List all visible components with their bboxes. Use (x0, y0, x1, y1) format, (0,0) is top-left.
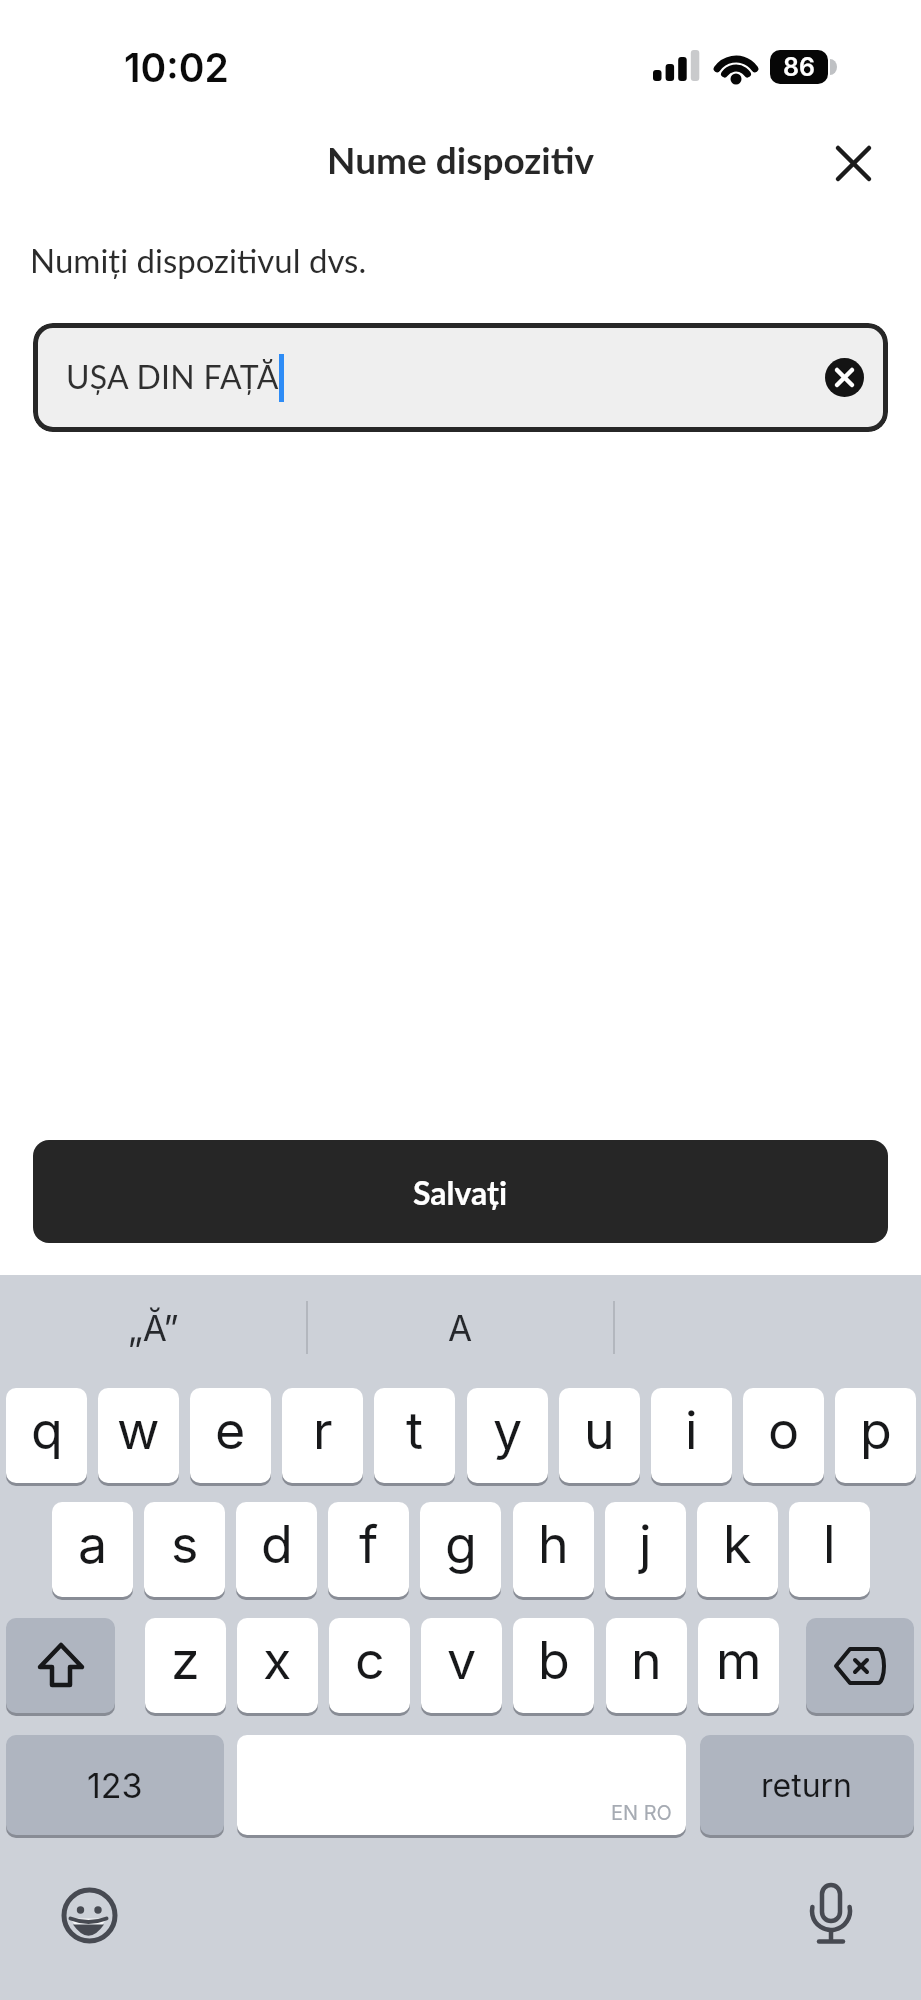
staticText: n (631, 1629, 662, 1692)
button[interactable]: k (697, 1502, 778, 1597)
button[interactable] (825, 358, 864, 397)
staticText: Nume dispozitiv (327, 137, 595, 181)
staticText: 10:02 (124, 44, 229, 91)
button[interactable]: d (236, 1502, 317, 1597)
button[interactable]: s (144, 1502, 225, 1597)
staticText: 86 (783, 52, 815, 82)
staticText: o (768, 1399, 800, 1462)
staticText: f (359, 1513, 379, 1576)
button[interactable]: b (513, 1618, 594, 1713)
staticText: l (823, 1513, 836, 1576)
button[interactable]: c (329, 1618, 410, 1713)
staticText: v (447, 1629, 477, 1692)
staticText: m (716, 1629, 762, 1692)
staticText: c (355, 1629, 385, 1692)
staticText: w (117, 1399, 160, 1462)
button[interactable]: Salvați (33, 1140, 888, 1243)
button[interactable]: y (467, 1388, 548, 1483)
button[interactable]: e (190, 1388, 271, 1483)
button[interactable] (806, 1618, 914, 1713)
staticText: a (78, 1513, 108, 1576)
staticText: 123 (87, 1765, 143, 1806)
staticText: h (538, 1513, 569, 1576)
button[interactable]: o (743, 1388, 824, 1483)
staticText: Salvați (413, 1173, 508, 1211)
button[interactable]: 123 (6, 1735, 224, 1835)
button[interactable]: m (698, 1618, 779, 1713)
staticText: i (685, 1399, 698, 1462)
staticText: EN RO (611, 1801, 672, 1825)
button[interactable]: n (606, 1618, 687, 1713)
staticText: z (171, 1629, 200, 1692)
button[interactable]: A (307, 1283, 614, 1373)
button[interactable]: g (420, 1502, 501, 1597)
staticText: q (31, 1399, 63, 1462)
staticText: u (584, 1399, 615, 1462)
staticText: A (448, 1307, 473, 1349)
staticText: x (263, 1629, 292, 1692)
staticText: g (445, 1513, 477, 1576)
staticText: Numiți dispozitivul dvs. (30, 240, 367, 280)
button[interactable] (61, 1887, 119, 1945)
staticText: „Ă” (128, 1307, 179, 1349)
button[interactable]: i (651, 1388, 732, 1483)
button[interactable]: return (700, 1735, 914, 1835)
button[interactable]: UȘA DIN FAȚĂ (33, 323, 888, 432)
button[interactable]: h (513, 1502, 594, 1597)
staticText: t (406, 1399, 424, 1462)
staticText: p (860, 1399, 892, 1462)
button[interactable]: t (374, 1388, 455, 1483)
staticText: UȘA DIN FAȚĂ (66, 357, 279, 395)
button[interactable]: j (605, 1502, 686, 1597)
staticText: return (761, 1766, 853, 1805)
staticText: r (313, 1399, 333, 1462)
staticText: d (261, 1513, 293, 1576)
button[interactable]: w (98, 1388, 179, 1483)
button[interactable]: EN RO (237, 1735, 686, 1835)
button[interactable]: p (835, 1388, 916, 1483)
button[interactable]: f (328, 1502, 409, 1597)
button[interactable]: l (789, 1502, 870, 1597)
button[interactable] (6, 1618, 115, 1713)
button[interactable] (804, 1879, 858, 1947)
button[interactable]: z (145, 1618, 226, 1713)
button[interactable]: r (282, 1388, 363, 1483)
staticText: b (538, 1629, 570, 1692)
staticText: j (639, 1513, 652, 1576)
staticText: y (493, 1399, 523, 1462)
button[interactable]: u (559, 1388, 640, 1483)
staticText: k (723, 1513, 752, 1576)
button[interactable] (826, 136, 880, 190)
staticText: e (215, 1399, 246, 1462)
staticText: s (171, 1513, 199, 1576)
button[interactable]: „Ă” (0, 1283, 307, 1373)
button[interactable]: q (6, 1388, 87, 1483)
button[interactable]: v (421, 1618, 502, 1713)
button[interactable]: x (237, 1618, 318, 1713)
button[interactable]: a (52, 1502, 133, 1597)
